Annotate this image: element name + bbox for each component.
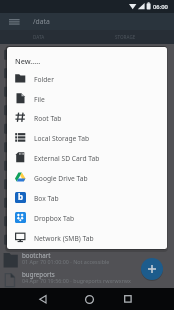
- button[interactable]: Root Tab: [7, 108, 167, 128]
- button[interactable]: STORAGE: [115, 34, 136, 40]
- staticText: Network (SMB) Tab: [34, 234, 94, 243]
- staticText: Box Tab: [34, 194, 59, 203]
- staticText: Google Drive Tab: [34, 174, 88, 183]
- staticText: b: [18, 192, 24, 202]
- button[interactable]: bugreports: [0, 269, 174, 288]
- staticText: /data: [33, 17, 50, 26]
- staticText: 01 Apr 70 01:00:00 · Not accessible: [22, 258, 110, 265]
- button[interactable]: Folder: [7, 69, 167, 89]
- staticText: Local Storage Tab: [34, 134, 90, 143]
- button[interactable]: [9, 19, 20, 25]
- button[interactable]: File: [7, 89, 167, 109]
- staticText: External SD Card Tab: [34, 154, 100, 163]
- staticText: Folder: [34, 75, 54, 84]
- staticText: Root Tab: [34, 114, 62, 123]
- staticText: File: [34, 95, 45, 104]
- button[interactable]: [124, 295, 132, 303]
- button[interactable]: DATA: [33, 34, 45, 40]
- button[interactable]: Network (SMB) Tab: [7, 228, 167, 248]
- button[interactable]: b: [7, 188, 167, 208]
- button[interactable]: [39, 295, 47, 304]
- staticText: Dropbox Tab: [34, 214, 75, 223]
- button[interactable]: Local Storage Tab: [7, 128, 167, 148]
- staticText: bootchart: [22, 251, 51, 259]
- button[interactable]: External SD Card Tab: [7, 148, 167, 168]
- button[interactable]: bootchart: [0, 250, 174, 269]
- staticText: bugreports: [22, 270, 55, 278]
- staticText: 04 Apr 70 19:56:00 · bugreports rwxrwxrw…: [22, 277, 131, 284]
- button[interactable]: [85, 295, 94, 304]
- staticText: New.....: [15, 56, 41, 66]
- button[interactable]: [141, 258, 163, 280]
- button[interactable]: Google Drive Tab: [7, 168, 167, 188]
- button[interactable]: Dropbox Tab: [7, 208, 167, 228]
- staticText: 06:00: [153, 3, 168, 11]
